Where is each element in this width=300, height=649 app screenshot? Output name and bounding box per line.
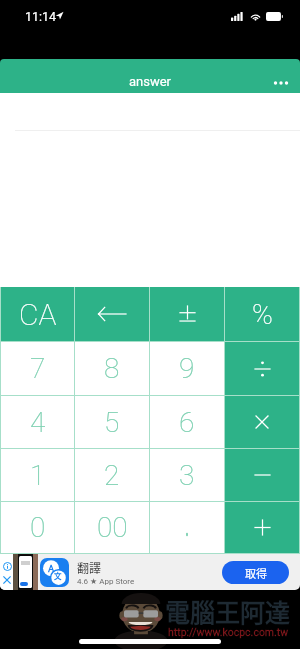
staticText: CA [19, 297, 57, 332]
button[interactable]: Ad info [3, 562, 12, 571]
button[interactable]: 1 [1, 449, 74, 501]
button[interactable]: CA [1, 287, 74, 341]
button[interactable]: mul [225, 396, 299, 448]
button[interactable]: % [225, 287, 299, 341]
staticText: 6 [179, 406, 195, 439]
staticText: 1 [30, 459, 46, 492]
button[interactable]: 3 [150, 449, 224, 501]
staticText: 4.6 ★ App Store [77, 577, 135, 586]
button[interactable]: add [225, 502, 299, 553]
staticText: 5 [104, 406, 120, 439]
staticText: answer [129, 74, 172, 89]
button[interactable]: 8 [75, 342, 149, 395]
button[interactable]: 0 [1, 502, 74, 553]
staticText: http://www.kocpc.com.tw [168, 626, 289, 638]
staticText: 7 [30, 352, 46, 385]
staticText: 3 [179, 459, 195, 492]
button[interactable]: 2 [75, 449, 149, 501]
button[interactable]: 取得 [222, 561, 289, 584]
staticText: 0 [30, 511, 46, 544]
staticText: 文 [54, 570, 62, 581]
staticText: 4 [30, 406, 46, 439]
staticText: A [48, 563, 55, 574]
button[interactable]: sub [225, 449, 299, 501]
button[interactable]: More options [271, 73, 291, 93]
button[interactable]: dot [150, 502, 224, 553]
staticText: 9 [179, 352, 195, 385]
button[interactable]: 00 [75, 502, 149, 553]
button[interactable]: 5 [75, 396, 149, 448]
staticText: 取得 [245, 565, 267, 581]
button[interactable]: Close ad [2, 575, 12, 585]
staticText: % [252, 298, 273, 331]
button[interactable]: 7 [1, 342, 74, 395]
staticText: 00 [97, 511, 128, 544]
button[interactable]: 9 [150, 342, 224, 395]
button[interactable]: bks [75, 287, 149, 341]
staticText: 11:14 [25, 9, 57, 24]
button[interactable]: 6 [150, 396, 224, 448]
button[interactable]: div [225, 342, 299, 395]
button[interactable] [150, 287, 224, 341]
staticText: 翻譯 [77, 559, 102, 576]
staticText: 電腦王阿達 [165, 593, 291, 629]
button[interactable]: 4 [1, 396, 74, 448]
staticText: 2 [104, 459, 120, 492]
staticText: 8 [104, 352, 120, 385]
